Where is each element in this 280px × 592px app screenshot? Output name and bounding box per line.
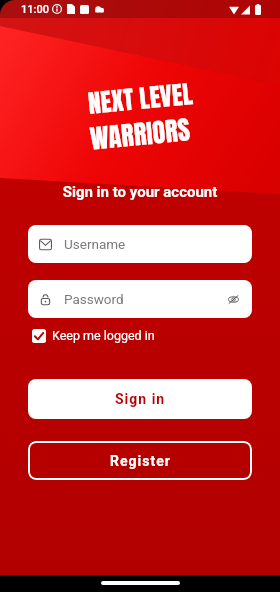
staticText: Password (64, 291, 124, 307)
staticText: WARRIORS (88, 109, 193, 158)
staticText: Keep me logged in (52, 328, 155, 343)
button[interactable]: Show password (226, 292, 241, 307)
staticText: NEXT LEVEL (86, 75, 195, 123)
button[interactable]: Keep me logged in (32, 326, 155, 345)
button[interactable]: Sign in (28, 379, 252, 419)
button[interactable]: Username (28, 225, 252, 263)
staticText: Sign in (115, 391, 166, 407)
staticText: Register (110, 453, 171, 469)
button[interactable]: Password (28, 280, 252, 318)
button[interactable]: Register (28, 441, 252, 480)
staticText: Username (64, 236, 126, 252)
staticText: Sign in to your account (0, 183, 280, 201)
staticText: 11:00 (21, 3, 49, 16)
